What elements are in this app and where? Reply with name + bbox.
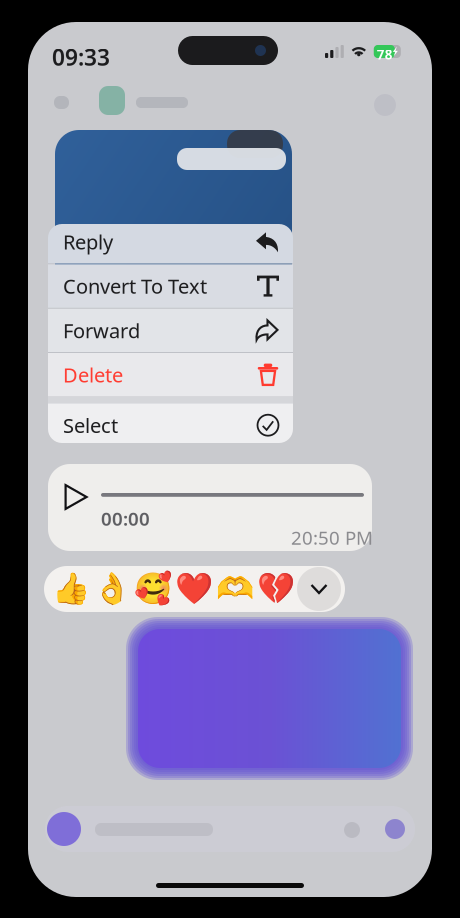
button[interactable]: React 🫶: [214, 566, 255, 612]
staticText: Convert To Text: [63, 273, 207, 299]
button[interactable]: React 💔: [255, 566, 296, 612]
staticText: 00:00: [101, 506, 150, 531]
button[interactable]: Select: [48, 403, 293, 447]
button[interactable]: Play voice message: [62, 482, 90, 512]
staticText: ❤️: [174, 571, 212, 606]
button[interactable]: React 🥰: [132, 566, 173, 612]
button[interactable]: React 👌: [91, 566, 132, 612]
staticText: 🥰: [133, 571, 171, 606]
button[interactable]: Delete: [48, 353, 293, 396]
button[interactable]: React 👍: [50, 566, 91, 612]
button[interactable]: More reactions: [296, 566, 342, 612]
button[interactable]: React ❤️: [173, 566, 214, 612]
staticText: 09:33: [52, 42, 110, 72]
staticText: Select: [63, 412, 118, 438]
button[interactable]: Reply: [48, 220, 293, 264]
staticText: Reply: [63, 228, 113, 255]
staticText: 👍: [51, 571, 89, 606]
staticText: Forward: [63, 317, 140, 344]
button[interactable]: Forward: [48, 309, 293, 352]
staticText: 💔: [256, 571, 294, 606]
staticText: Delete: [63, 361, 123, 388]
staticText: 👌: [92, 571, 130, 606]
button[interactable]: Convert To Text: [48, 264, 293, 308]
staticText: 20:50 PM: [291, 525, 373, 550]
staticText: 78: [377, 45, 393, 63]
staticText: 🫶: [215, 571, 253, 606]
